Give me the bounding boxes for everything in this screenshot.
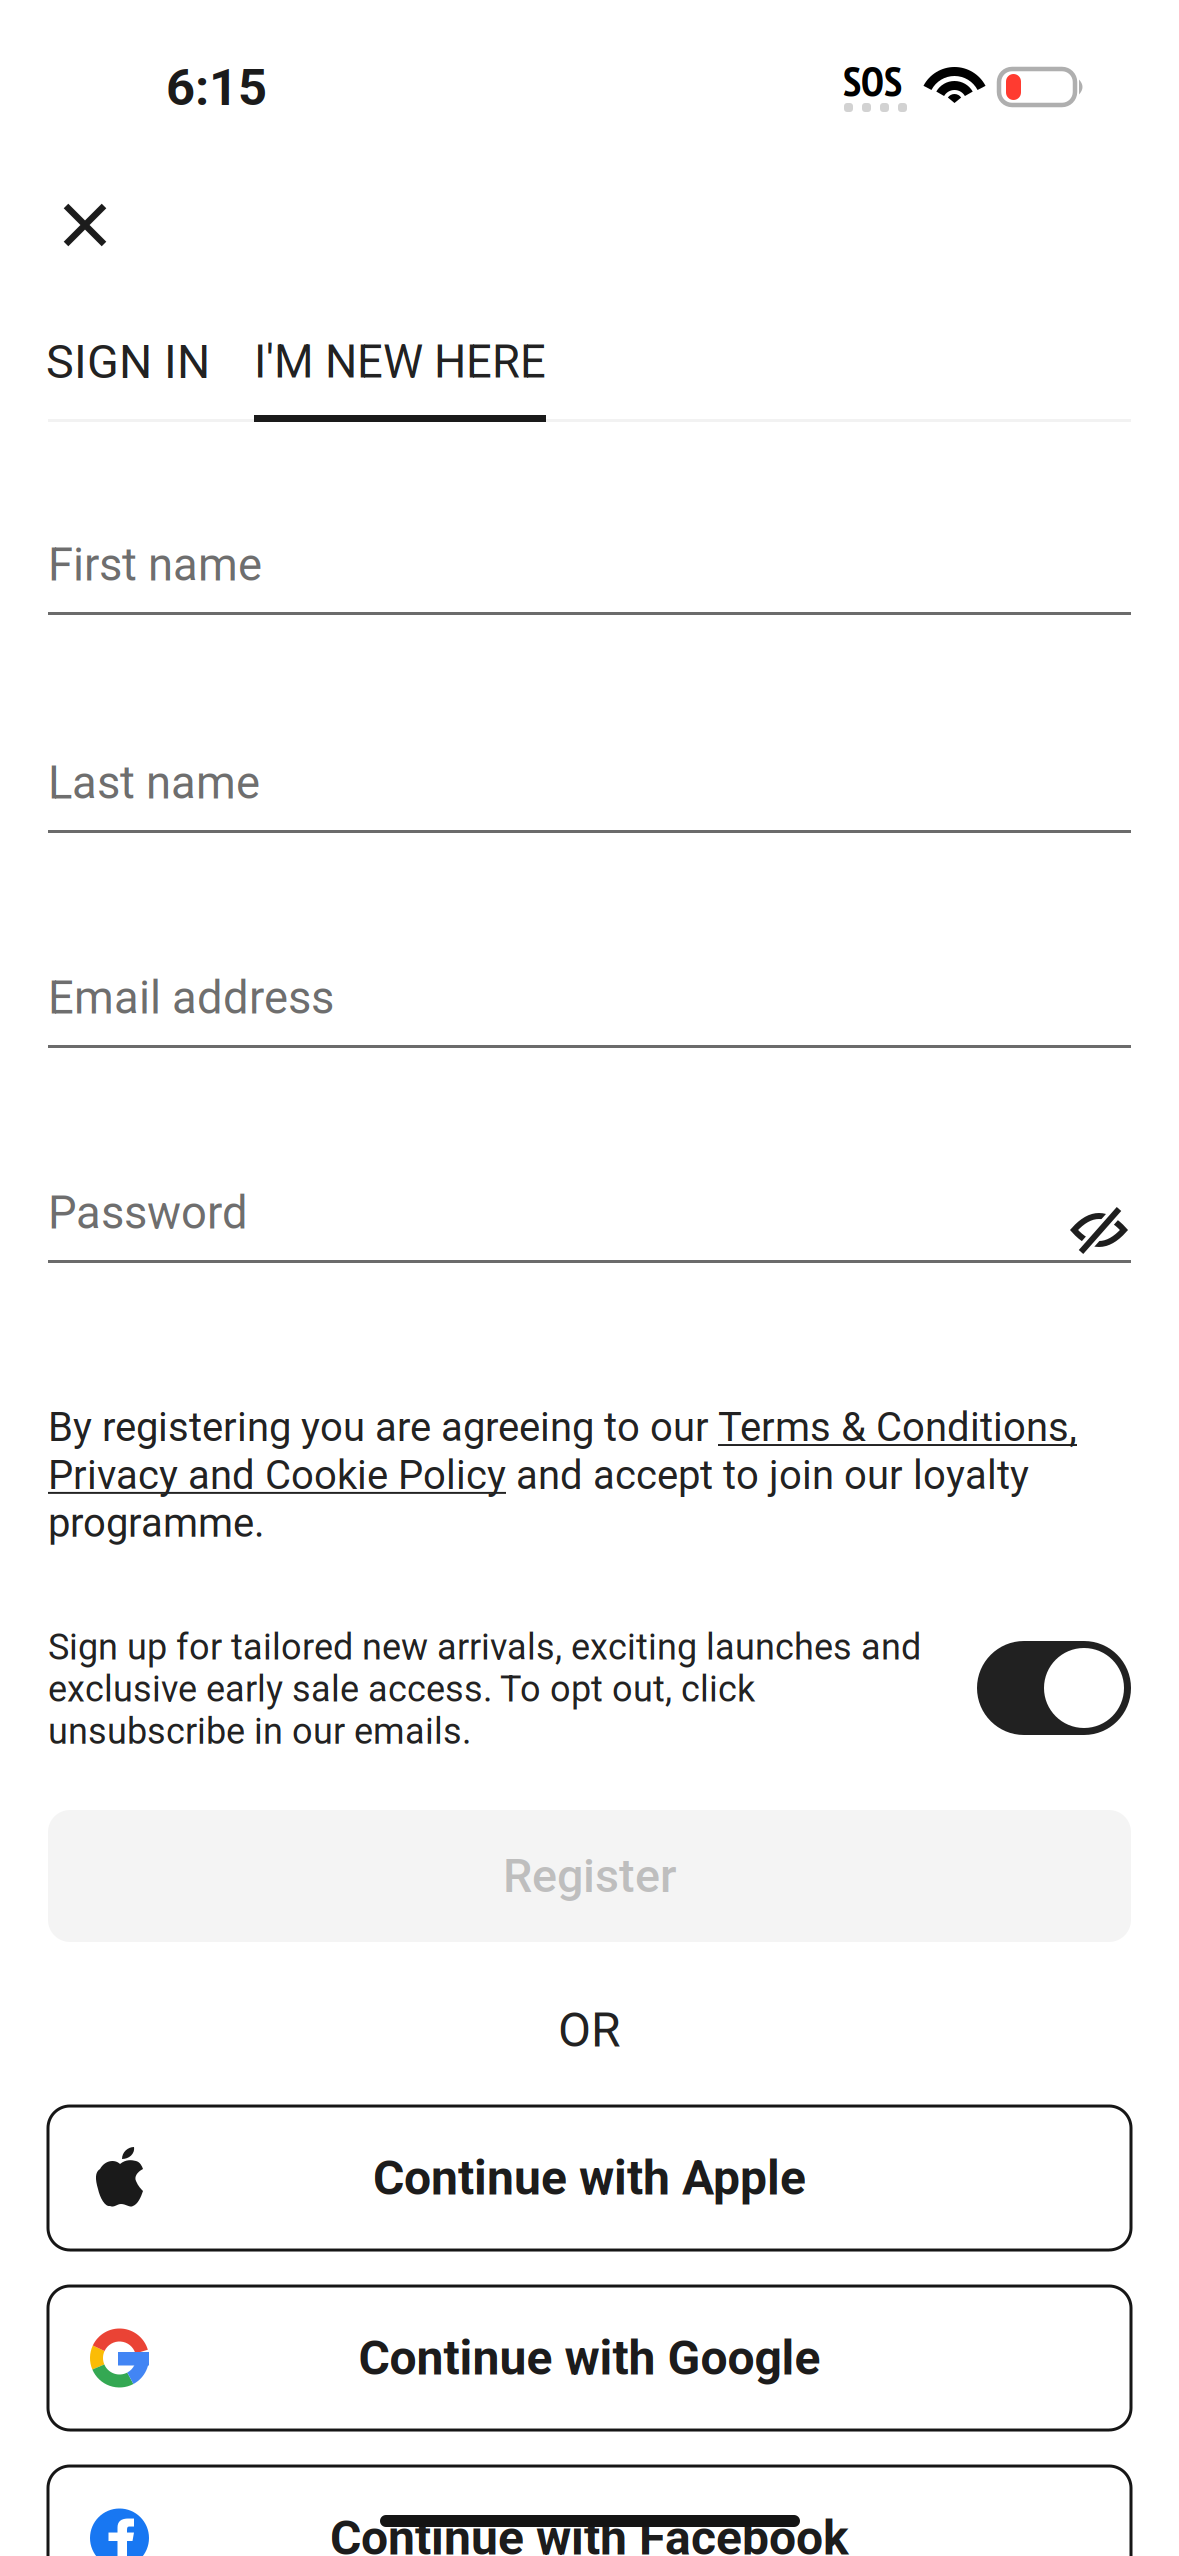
button[interactable]: Show password	[1064, 1200, 1134, 1260]
button[interactable]: Continue with Facebook	[48, 2466, 1131, 2556]
staticText: exclusive early sale access. To opt out,…	[48, 1668, 755, 1710]
staticText: Password	[48, 1186, 248, 1239]
button[interactable]: I'M NEW HERE	[254, 335, 546, 422]
button[interactable]: Last name	[48, 757, 1131, 833]
button[interactable]: Continue with Google	[48, 2286, 1131, 2430]
staticText: Last name	[48, 756, 260, 809]
staticText: I'M NEW HERE	[254, 335, 546, 388]
staticText: 6:15	[166, 58, 267, 117]
staticText: SOS	[843, 54, 902, 107]
staticText: Continue with Apple	[373, 2150, 806, 2206]
button[interactable]: Close	[40, 180, 148, 270]
staticText: First name	[48, 538, 262, 591]
button[interactable]: Email address	[48, 972, 1131, 1048]
staticText: Register	[503, 1849, 676, 1903]
button[interactable]: SIGN IN	[46, 335, 210, 422]
staticText: SIGN IN	[46, 335, 210, 389]
staticText: OR	[558, 2002, 621, 2058]
staticText: By registering you are agreeing to our T…	[48, 1404, 1077, 1451]
staticText: Privacy and Cookie Policy and accept to …	[48, 1452, 1029, 1499]
button[interactable]: Continue with Apple	[48, 2106, 1131, 2250]
staticText: unsubscribe in our emails.	[48, 1710, 471, 1753]
staticText: Sign up for tailored new arrivals, excit…	[48, 1626, 921, 1668]
button[interactable]: Register	[48, 1810, 1131, 1942]
button[interactable]: Marketing opt-in	[977, 1641, 1131, 1735]
button[interactable]: First name	[48, 539, 1131, 615]
staticText: Continue with Facebook	[330, 2510, 849, 2556]
staticText: programme.	[48, 1500, 265, 1547]
button[interactable]: Password	[48, 1187, 1131, 1263]
staticText: Email address	[48, 971, 334, 1024]
staticText: Continue with Google	[358, 2330, 820, 2386]
